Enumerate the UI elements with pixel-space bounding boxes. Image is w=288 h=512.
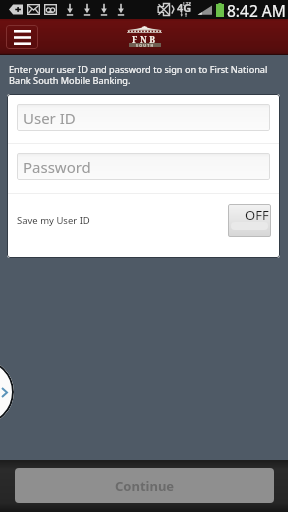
staticText: 4G: [177, 0, 192, 15]
staticText: SOUTH: [136, 43, 155, 47]
staticText: Save my User ID: [17, 214, 90, 227]
staticText: FNB: [132, 34, 158, 46]
button[interactable]: Save my User ID, off: [228, 204, 271, 237]
button[interactable]: User ID: [17, 104, 270, 131]
staticText: Continue: [115, 477, 175, 495]
button[interactable]: Open side panel: [0, 359, 14, 425]
button[interactable]: Password: [17, 153, 270, 180]
staticText: Enter your user ID and password to sign …: [9, 63, 284, 87]
staticText: Password: [23, 157, 91, 177]
button[interactable]: Continue: [15, 468, 274, 503]
staticText: OFF: [245, 206, 269, 224]
staticText: User ID: [23, 108, 76, 128]
button[interactable]: Menu: [6, 25, 38, 49]
staticText: 8:42 AM: [227, 0, 286, 19]
staticText: LTE: [183, 1, 192, 8]
